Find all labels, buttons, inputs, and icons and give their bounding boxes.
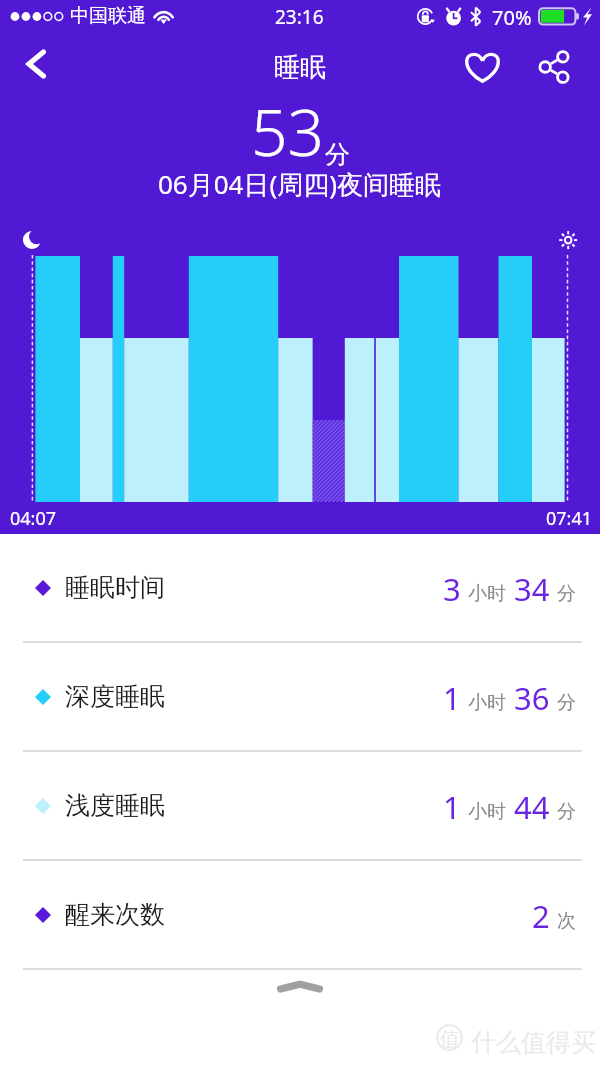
staticText: 3 <box>443 568 461 610</box>
staticText: 什么值得买 <box>471 1027 596 1058</box>
button[interactable]: 睡眠时间 <box>0 534 600 641</box>
staticText: 34 <box>514 568 550 610</box>
staticText: 睡眠 <box>274 51 326 84</box>
button[interactable]: Back <box>10 36 66 92</box>
button[interactable]: 深度睡眠 <box>0 643 600 750</box>
staticText: 小时 <box>468 800 506 824</box>
staticText: 23:16 <box>275 4 324 30</box>
staticText: 53 <box>251 88 325 175</box>
staticText: 次 <box>557 909 576 933</box>
button[interactable]: 浅度睡眠 <box>0 752 600 859</box>
staticText: 小时 <box>468 582 506 606</box>
staticText: 浅度睡眠 <box>65 790 165 821</box>
staticText: 2 <box>532 895 550 937</box>
staticText: 36 <box>514 677 550 719</box>
staticText: 睡眠时间 <box>65 572 165 603</box>
staticText: 1 <box>443 786 461 828</box>
staticText: 44 <box>514 786 550 828</box>
staticText: 小时 <box>468 691 506 715</box>
staticText: 分 <box>557 582 576 606</box>
staticText: 07:41 <box>0 506 592 531</box>
staticText: 中国联通 <box>70 4 146 28</box>
staticText: 分 <box>557 691 576 715</box>
staticText: 06月04日(周四)夜间睡眠 <box>158 166 442 202</box>
staticText: 深度睡眠 <box>65 681 165 712</box>
button[interactable]: Favorite <box>454 39 510 95</box>
button[interactable]: 醒来次数 <box>0 861 600 968</box>
staticText: 醒来次数 <box>65 899 165 930</box>
button[interactable]: Expand <box>0 970 600 1014</box>
staticText: 分 <box>557 800 576 824</box>
staticText: 1 <box>443 677 461 719</box>
button[interactable]: Share <box>526 39 582 95</box>
staticText: 70% <box>492 4 532 31</box>
staticText: 分 <box>325 139 350 170</box>
staticText: 值 <box>440 1027 460 1052</box>
staticText: 04:07 <box>10 506 57 531</box>
